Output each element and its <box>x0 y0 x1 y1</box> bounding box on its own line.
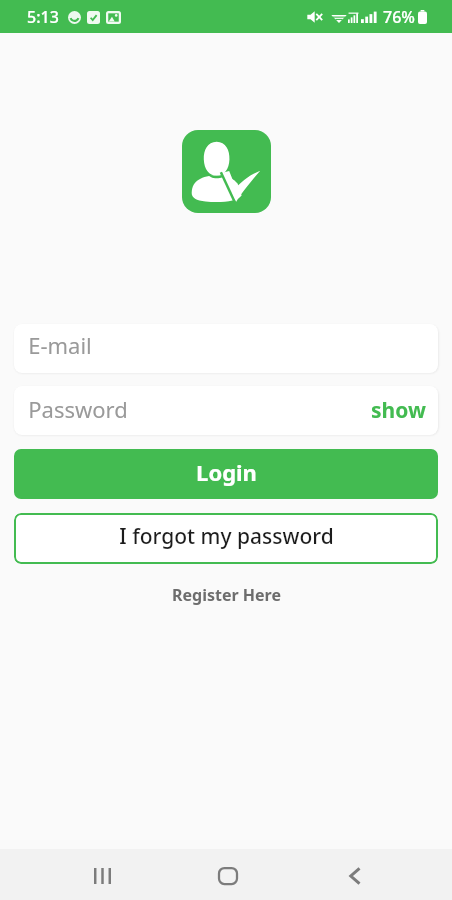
button[interactable]: Home <box>204 852 252 900</box>
staticText: show <box>371 396 426 421</box>
button[interactable]: Password <box>14 386 438 435</box>
button[interactable]: E-mail <box>14 324 438 373</box>
button[interactable]: show <box>355 386 438 435</box>
button[interactable]: Register Here <box>162 580 291 610</box>
staticText: Password <box>28 394 128 424</box>
staticText: E-mail <box>28 330 92 360</box>
staticText: Register Here <box>172 584 281 606</box>
button[interactable]: I forgot my password <box>14 513 438 564</box>
button[interactable]: Login <box>14 449 438 499</box>
button[interactable]: Back <box>331 852 379 900</box>
staticText: I forgot my password <box>119 522 334 551</box>
staticText: 5:13 <box>27 6 59 28</box>
staticText: Login <box>196 457 257 487</box>
staticText: 76% <box>383 6 415 28</box>
button[interactable]: Recents <box>78 852 126 900</box>
